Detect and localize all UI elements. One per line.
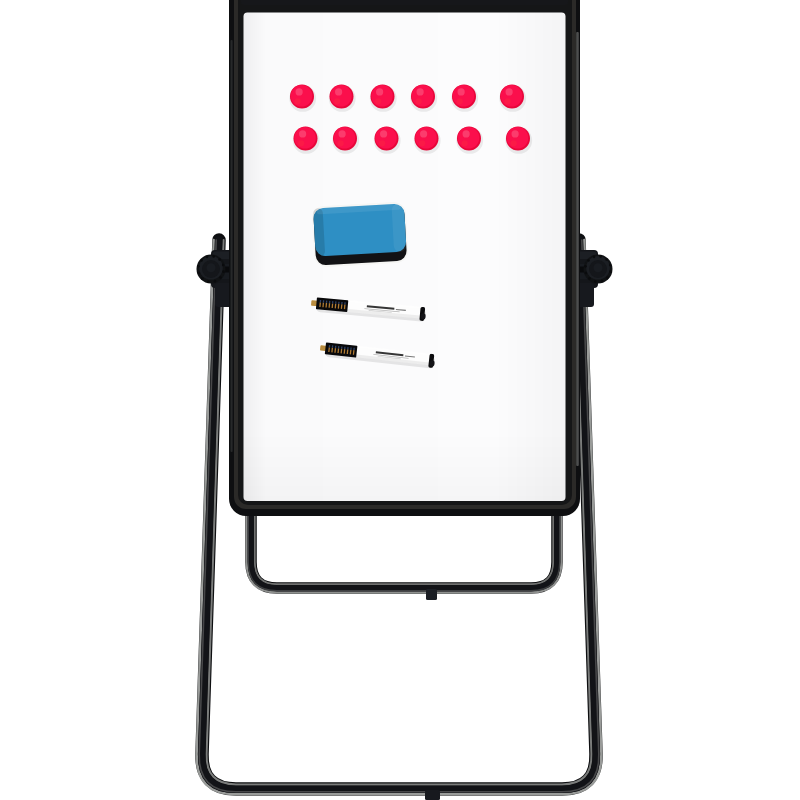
- button[interactable]: Whiteboard easel: [0, 0, 800, 800]
